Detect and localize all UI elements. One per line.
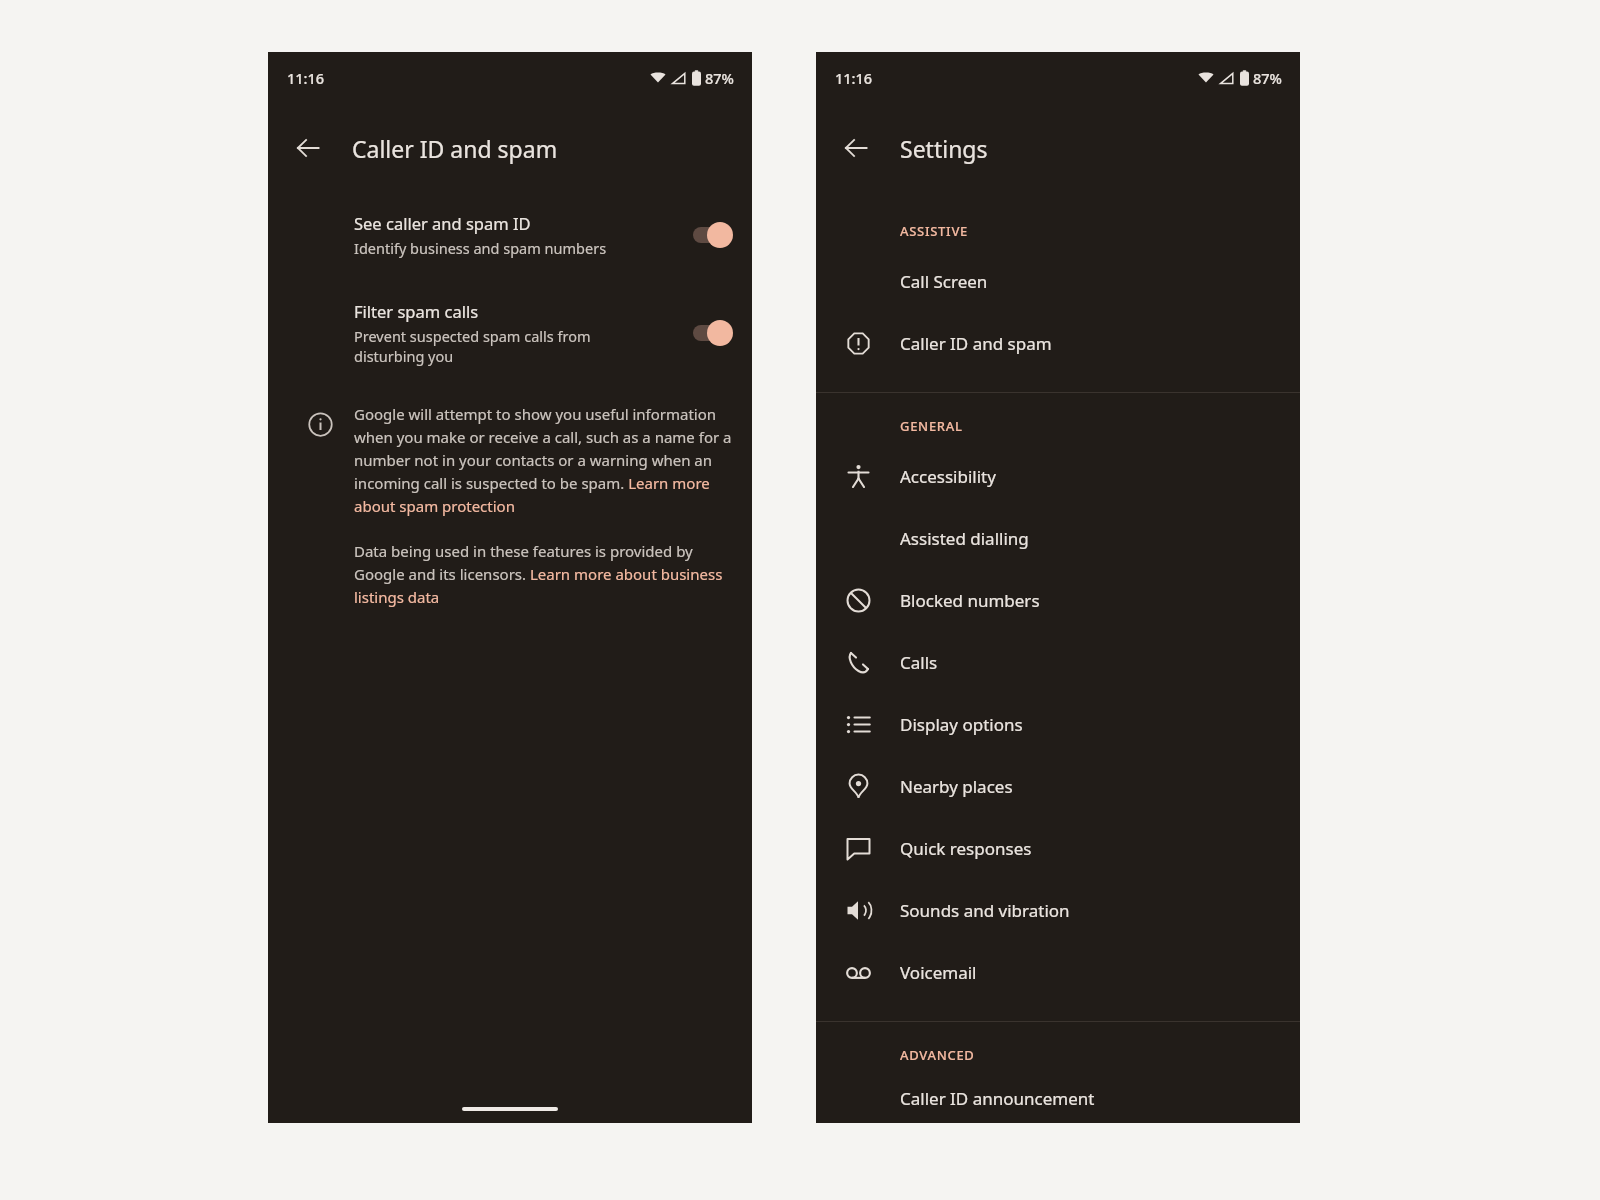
staticText: Sounds and vibration [900, 899, 1070, 922]
button[interactable]: See caller and spam ID [268, 206, 752, 264]
staticText: ADVANCED [900, 1046, 975, 1064]
staticText: 87% [705, 68, 734, 88]
button[interactable]: Display options [816, 693, 1300, 755]
button[interactable]: Filter spam calls [268, 294, 752, 372]
button[interactable]: Caller ID announcement [816, 1074, 1300, 1123]
staticText: Google will attempt to show you useful i… [354, 404, 734, 517]
staticText: Display options [900, 713, 1023, 736]
button[interactable]: Calls [816, 631, 1300, 693]
staticText: Settings [900, 133, 988, 164]
staticText: Quick responses [900, 837, 1032, 860]
button[interactable]: Nearby places [816, 755, 1300, 817]
button[interactable]: Toggle Filter spam calls [688, 313, 752, 353]
staticText: Calls [900, 651, 938, 674]
staticText: See caller and spam ID [354, 212, 531, 234]
staticText: Nearby places [900, 775, 1013, 798]
staticText: Filter spam calls [354, 300, 479, 322]
button[interactable]: Call Screen [816, 250, 1300, 312]
button[interactable]: Back [284, 124, 332, 172]
button[interactable]: Assisted dialling [816, 507, 1300, 569]
staticText: Prevent suspected spam calls from [354, 326, 591, 346]
staticText: 87% [1253, 68, 1282, 88]
staticText: Caller ID announcement [900, 1087, 1095, 1110]
staticText: Caller ID and spam [352, 133, 558, 164]
button[interactable]: Blocked numbers [816, 569, 1300, 631]
staticText: ASSISTIVE [900, 222, 969, 240]
staticText: Blocked numbers [900, 589, 1040, 612]
staticText: Data being used in these features is pro… [354, 541, 734, 608]
button[interactable]: Quick responses [816, 817, 1300, 879]
button[interactable]: Toggle See caller and spam ID [688, 215, 752, 255]
button[interactable]: Accessibility [816, 445, 1300, 507]
staticText: Assisted dialling [900, 527, 1029, 550]
staticText: Caller ID and spam [900, 332, 1052, 355]
button[interactable]: Voicemail [816, 941, 1300, 1003]
staticText: 11:16 [287, 68, 325, 88]
button[interactable]: Caller ID and spam [816, 312, 1300, 374]
staticText: Call Screen [900, 270, 988, 293]
staticText: Accessibility [900, 465, 996, 488]
staticText: disturbing you [354, 346, 454, 366]
staticText: Identify business and spam numbers [354, 238, 607, 258]
staticText: 11:16 [835, 68, 873, 88]
staticText: Voicemail [900, 961, 977, 984]
staticText: GENERAL [900, 417, 963, 435]
button[interactable]: Sounds and vibration [816, 879, 1300, 941]
button[interactable]: Back [832, 124, 880, 172]
